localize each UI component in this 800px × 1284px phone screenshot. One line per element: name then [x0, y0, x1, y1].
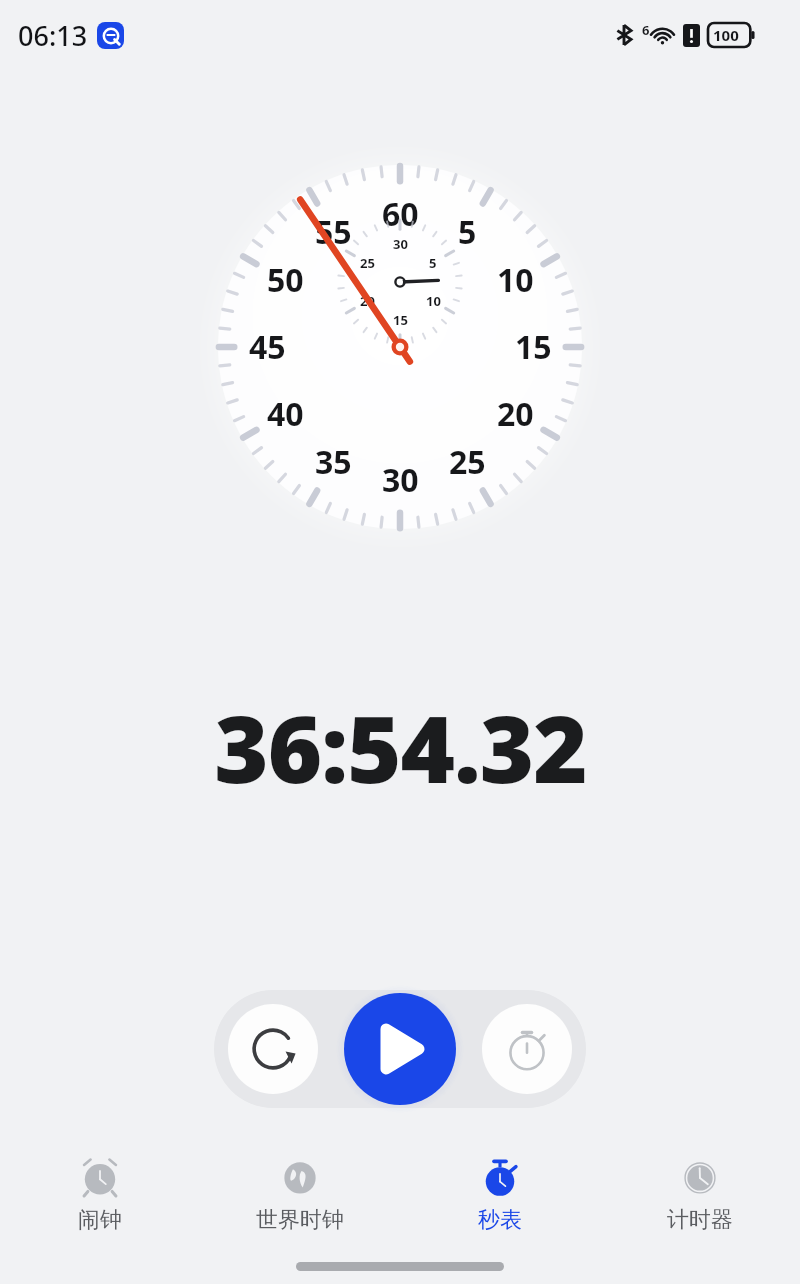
staticText: 50 [267, 258, 304, 302]
button[interactable]: Lap [482, 1004, 572, 1094]
staticText: 20 [360, 292, 375, 310]
staticText: 世界时钟 [256, 1206, 344, 1234]
button[interactable]: Start [344, 993, 456, 1105]
staticText: 06:13 [18, 17, 88, 54]
button[interactable]: 秒表 [400, 1148, 600, 1234]
staticText: 20 [497, 392, 534, 436]
staticText: 45 [249, 325, 286, 369]
button[interactable]: 计时器 [600, 1148, 800, 1234]
staticText: 10 [426, 292, 441, 310]
staticText: 35 [315, 440, 352, 484]
staticText: 30 [382, 458, 419, 502]
button[interactable]: 闹钟 [0, 1148, 200, 1234]
staticText: 6 [642, 21, 650, 39]
staticText: 闹钟 [78, 1206, 122, 1234]
staticText: 10 [497, 258, 534, 302]
staticText: 15 [393, 311, 408, 329]
staticText: 15 [515, 325, 552, 369]
staticText: 100 [713, 25, 739, 45]
staticText: 25 [449, 440, 486, 484]
staticText: 40 [267, 392, 304, 436]
staticText: 5 [429, 254, 437, 272]
button[interactable]: 世界时钟 [200, 1148, 400, 1234]
staticText: 30 [393, 235, 408, 253]
staticText: 计时器 [667, 1206, 733, 1234]
staticText: 25 [360, 254, 375, 272]
staticText: 36:54.32 [214, 684, 587, 811]
staticText: 5 [458, 210, 477, 254]
staticText: 60 [382, 192, 419, 236]
button[interactable]: Reset [228, 1004, 318, 1094]
staticText: 秒表 [478, 1206, 522, 1234]
staticText: 55 [315, 210, 352, 254]
